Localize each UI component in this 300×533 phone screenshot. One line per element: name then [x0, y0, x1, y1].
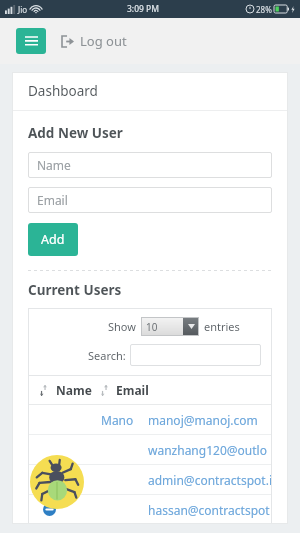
- staticText: entries: [204, 319, 240, 334]
- staticText: Jio: [18, 4, 28, 15]
- button[interactable]: Remove user: [28, 495, 272, 524]
- button[interactable]: Remove user: [43, 503, 56, 516]
- staticText: hassan@contractspot.io: [148, 502, 272, 518]
- button[interactable]: Report a bug: [30, 455, 84, 509]
- button[interactable]: Sort by Email: [101, 382, 149, 398]
- button[interactable]: Mano: [28, 405, 272, 434]
- staticText: Email: [116, 382, 149, 398]
- staticText: Dashboard: [28, 82, 98, 100]
- button[interactable]: Open navigation menu: [16, 28, 46, 54]
- staticText: Show: [108, 319, 136, 334]
- staticText: wanzhang120@outlook.co: [148, 442, 272, 458]
- button[interactable]: Search users: [130, 344, 261, 366]
- button[interactable]: Log out: [60, 26, 129, 56]
- staticText: Current Users: [28, 281, 122, 299]
- staticText: Name: [56, 382, 92, 398]
- button[interactable]: Add: [28, 223, 78, 256]
- button[interactable]: admin@contractspot.io: [28, 465, 272, 494]
- staticText: Add: [41, 231, 65, 248]
- button[interactable]: wanzhang120@outlook.co: [28, 435, 272, 464]
- staticText: 3:09 PM: [127, 3, 160, 15]
- staticText: Search:: [88, 348, 126, 363]
- staticText: Email: [37, 192, 68, 208]
- staticText: manoj@manoj.com: [148, 412, 258, 428]
- button[interactable]: Email: [28, 187, 272, 213]
- staticText: 10: [146, 320, 158, 334]
- button[interactable]: Name: [28, 152, 272, 178]
- button[interactable]: 10: [141, 317, 199, 336]
- staticText: admin@contractspot.io: [148, 472, 272, 488]
- staticText: 28%: [256, 4, 272, 15]
- staticText: Add New User: [28, 124, 123, 142]
- staticText: Name: [37, 157, 71, 173]
- button[interactable]: Sort by Name: [40, 382, 92, 398]
- staticText: Mano: [101, 412, 134, 428]
- staticText: Log out: [80, 32, 127, 50]
